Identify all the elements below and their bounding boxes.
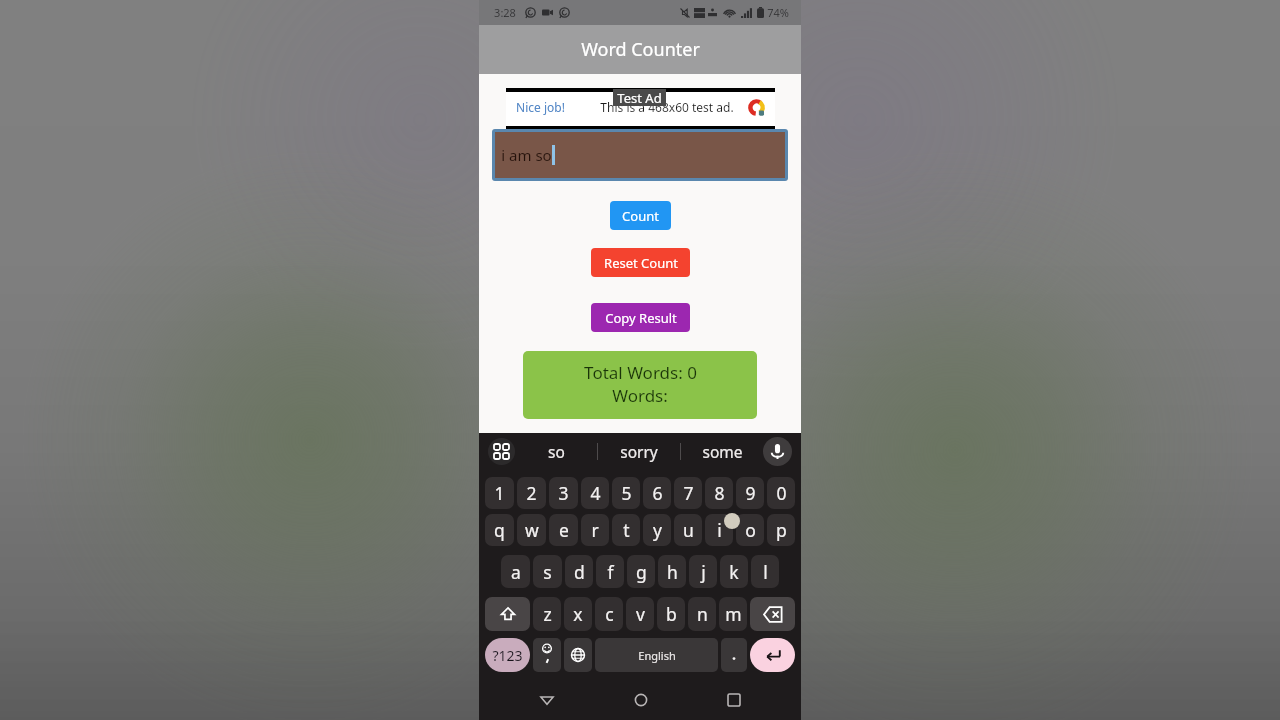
staticText: some — [702, 441, 743, 462]
staticText: Words: — [612, 384, 668, 407]
staticText: i am so — [501, 145, 552, 165]
button[interactable]: Emoji — [533, 638, 561, 672]
button[interactable]: Delete — [750, 597, 795, 631]
button[interactable]: Keyboard toolbar — [488, 438, 515, 465]
button[interactable]: 0 — [767, 477, 795, 509]
button[interactable]: 4 — [581, 477, 609, 509]
button[interactable]: f — [596, 555, 624, 588]
button[interactable]: x — [564, 597, 592, 631]
staticText: 74% — [767, 5, 789, 20]
button[interactable]: Reset Count — [591, 248, 690, 277]
staticText: p — [776, 518, 787, 542]
button[interactable]: Change language — [564, 638, 592, 672]
staticText: 3:28 — [494, 5, 516, 20]
staticText: o — [745, 518, 756, 542]
button[interactable]: some — [681, 433, 763, 470]
button[interactable]: Count — [610, 201, 671, 230]
staticText: k — [729, 560, 739, 584]
staticText: s — [543, 560, 552, 584]
button[interactable]: 1 — [485, 477, 514, 509]
staticText: y — [653, 518, 662, 542]
staticText: r — [591, 518, 599, 542]
staticText: w — [525, 518, 539, 542]
staticText: b — [666, 602, 677, 626]
staticText: English — [638, 648, 676, 663]
button[interactable]: 2 — [517, 477, 546, 509]
staticText: j — [701, 560, 706, 584]
button[interactable]: Enter — [750, 638, 795, 672]
staticText: u — [683, 518, 694, 542]
button[interactable]: r — [581, 514, 609, 546]
staticText: c — [605, 602, 614, 626]
button[interactable]: g — [627, 555, 655, 588]
staticText: 3 — [558, 481, 569, 505]
button[interactable]: Voice input — [763, 437, 792, 466]
button[interactable]: 6 — [643, 477, 671, 509]
button[interactable]: English — [595, 638, 718, 672]
button[interactable]: a — [501, 555, 530, 588]
button[interactable]: y — [643, 514, 671, 546]
staticText: 8 — [714, 481, 725, 505]
staticText: 9 — [745, 481, 756, 505]
button[interactable]: sorry — [598, 433, 680, 470]
staticText: v — [636, 602, 645, 626]
staticText: Nice job! — [516, 99, 565, 115]
button[interactable]: b — [657, 597, 685, 631]
staticText: Total Words: 0 — [584, 361, 697, 384]
button[interactable]: k — [720, 555, 748, 588]
button[interactable]: z — [533, 597, 561, 631]
button[interactable]: u — [674, 514, 702, 546]
button[interactable]: h — [658, 555, 686, 588]
button[interactable]: c — [595, 597, 623, 631]
staticText: so — [548, 441, 565, 462]
button[interactable]: p — [767, 514, 795, 546]
button[interactable]: e — [549, 514, 578, 546]
staticText: a — [511, 560, 521, 584]
button[interactable]: w — [517, 514, 546, 546]
button[interactable]: Recent apps — [687, 680, 780, 720]
staticText: Word Counter — [581, 37, 700, 62]
staticText: sorry — [620, 441, 658, 462]
button[interactable]: o — [736, 514, 764, 546]
staticText: Count — [622, 207, 659, 225]
staticText: l — [763, 560, 768, 584]
button[interactable]: ?123 — [485, 638, 530, 672]
button[interactable]: so — [515, 433, 597, 470]
staticText: e — [559, 518, 569, 542]
staticText: n — [697, 602, 708, 626]
staticText: d — [574, 560, 585, 584]
button[interactable]: t — [612, 514, 640, 546]
button[interactable] — [721, 638, 747, 672]
button[interactable]: 7 — [674, 477, 702, 509]
staticText: 0 — [776, 481, 787, 505]
button[interactable]: q — [485, 514, 514, 546]
button[interactable]: j — [689, 555, 717, 588]
button[interactable]: s — [533, 555, 562, 588]
staticText: Test Ad — [617, 89, 662, 106]
button[interactable]: n — [688, 597, 716, 631]
button[interactable]: i — [705, 514, 733, 546]
staticText: h — [667, 560, 678, 584]
button[interactable]: m — [719, 597, 747, 631]
staticText: z — [543, 602, 552, 626]
button[interactable]: Back — [500, 680, 594, 720]
button[interactable]: Home — [594, 680, 687, 720]
button[interactable]: Copy Result — [591, 303, 690, 332]
button[interactable]: v — [626, 597, 654, 631]
staticText: g — [636, 560, 647, 584]
staticText: 4 — [590, 481, 601, 505]
button[interactable]: 8 — [705, 477, 733, 509]
staticText: 2 — [526, 481, 537, 505]
button[interactable]: 9 — [736, 477, 764, 509]
staticText: i — [717, 518, 722, 542]
staticText: t — [623, 518, 630, 542]
staticText: 1 — [494, 481, 505, 505]
button[interactable]: 3 — [549, 477, 578, 509]
button[interactable]: i am so — [495, 132, 785, 178]
button[interactable]: 5 — [612, 477, 640, 509]
button[interactable]: Shift — [485, 597, 530, 631]
button[interactable]: d — [565, 555, 593, 588]
button[interactable]: l — [751, 555, 779, 588]
staticText: Copy Result — [605, 309, 677, 327]
staticText: 7 — [683, 481, 694, 505]
